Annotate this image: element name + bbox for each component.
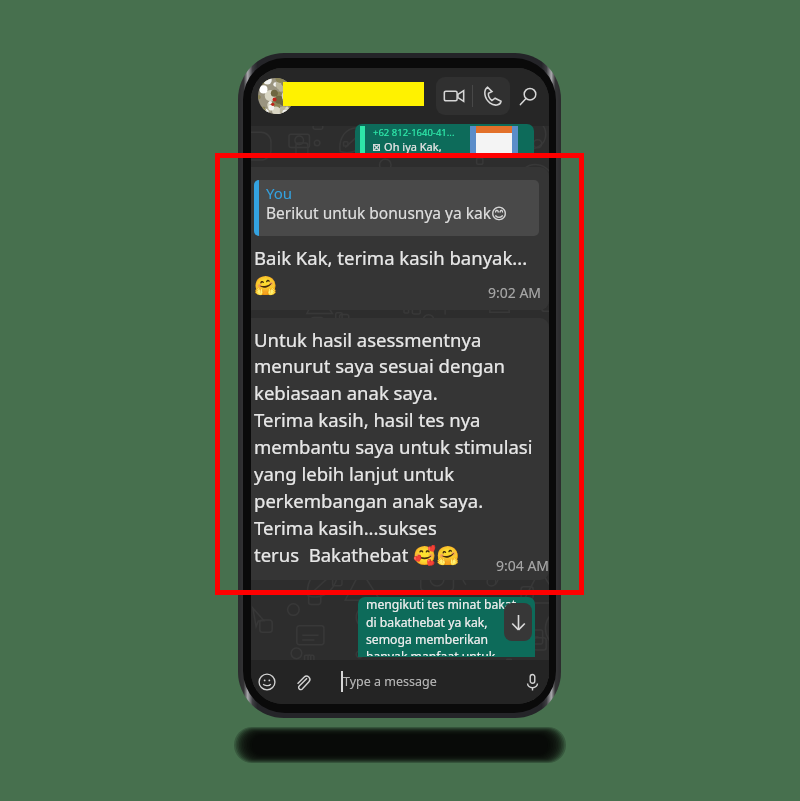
button[interactable]: Search bbox=[513, 82, 543, 112]
button[interactable]: You bbox=[251, 167, 549, 310]
button[interactable]: Record voice message bbox=[521, 671, 543, 693]
staticText: Type a message bbox=[343, 673, 437, 690]
button[interactable]: Untuk hasil asessmentnya menurut saya se… bbox=[251, 318, 549, 580]
button[interactable]: Contact photo bbox=[258, 78, 294, 114]
staticText: 9:04 AM bbox=[496, 556, 549, 575]
staticText: You bbox=[266, 183, 293, 203]
button[interactable]: Video call bbox=[436, 77, 472, 115]
button[interactable]: Scroll to bottom bbox=[504, 603, 532, 641]
staticText: Berikut untuk bonusnya ya kak😊 bbox=[266, 202, 508, 223]
staticText: mengikuti tes minat bakat di bakathebat … bbox=[366, 597, 517, 656]
staticText: Untuk hasil asessmentnya menurut saya se… bbox=[254, 327, 533, 567]
button[interactable]: +62 812-1640-41... bbox=[355, 124, 534, 156]
staticText: ⊠ Oh iya Kak, bbox=[372, 139, 442, 154]
button[interactable]: Voice call bbox=[473, 77, 510, 115]
button[interactable]: Attach file bbox=[291, 671, 313, 693]
staticText: 9:02 AM bbox=[488, 283, 542, 302]
staticText: +62 812-1640-41... bbox=[373, 126, 455, 139]
button[interactable]: mengikuti tes minat bakat di bakathebat … bbox=[358, 597, 535, 657]
button[interactable]: Emoji bbox=[256, 671, 278, 693]
staticText: Baik Kak, terima kasih banyak... 🤗 bbox=[254, 245, 528, 297]
